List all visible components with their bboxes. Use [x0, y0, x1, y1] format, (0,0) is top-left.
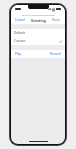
button[interactable]: Play [14, 51, 23, 57]
staticText: Cancel [15, 18, 25, 22]
staticText: Greeting [31, 18, 46, 23]
button[interactable]: Default [11, 29, 65, 37]
staticText: Default [14, 31, 25, 35]
staticText: Record [50, 52, 61, 56]
button[interactable]: Done [51, 17, 62, 23]
button[interactable]: Record [49, 51, 62, 57]
staticText: Done [52, 18, 61, 22]
button[interactable]: Custom [11, 37, 65, 45]
staticText: Set your outgoing message [11, 13, 65, 16]
button[interactable]: Cancel [14, 17, 26, 23]
staticText: Play [15, 52, 22, 56]
other: Selected [59, 40, 62, 43]
staticText: Custom [14, 39, 26, 43]
